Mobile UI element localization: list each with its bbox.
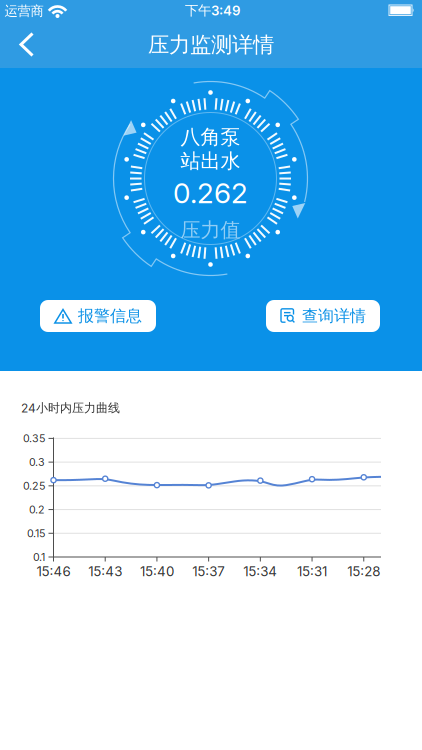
staticText: 八角泵 (180, 125, 240, 149)
staticText: 0.15 (27, 527, 45, 540)
button[interactable]: 报警信息 (40, 300, 156, 332)
staticText: 0.1 (33, 551, 45, 563)
staticText: 报警信息 (78, 306, 142, 326)
staticText: 压力值 (180, 218, 240, 242)
staticText: 15:34 (243, 564, 277, 579)
staticText: 15:37 (192, 564, 225, 579)
staticText: 15:28 (347, 564, 380, 579)
staticText: 15:43 (88, 564, 122, 579)
staticText: 15:31 (297, 564, 327, 579)
staticText: 15:46 (36, 564, 70, 579)
staticText: 0.35 (23, 432, 45, 445)
staticText: 运营商 (4, 3, 43, 19)
staticText: 15:40 (140, 564, 174, 579)
staticText: 查询详情 (302, 306, 366, 326)
staticText: 站出水 (180, 149, 240, 173)
staticText: 0.2 (29, 503, 45, 516)
staticText: 24小时内压力曲线 (21, 401, 120, 415)
staticText: 0.3 (29, 456, 45, 468)
staticText: 下午3:49 (185, 2, 241, 19)
staticText: 压力监测详情 (148, 32, 274, 58)
button[interactable]: 查询详情 (266, 300, 380, 332)
staticText: 0.262 (173, 176, 248, 209)
staticText: 0.25 (23, 479, 45, 492)
button[interactable]: Back (0, 0, 35, 57)
